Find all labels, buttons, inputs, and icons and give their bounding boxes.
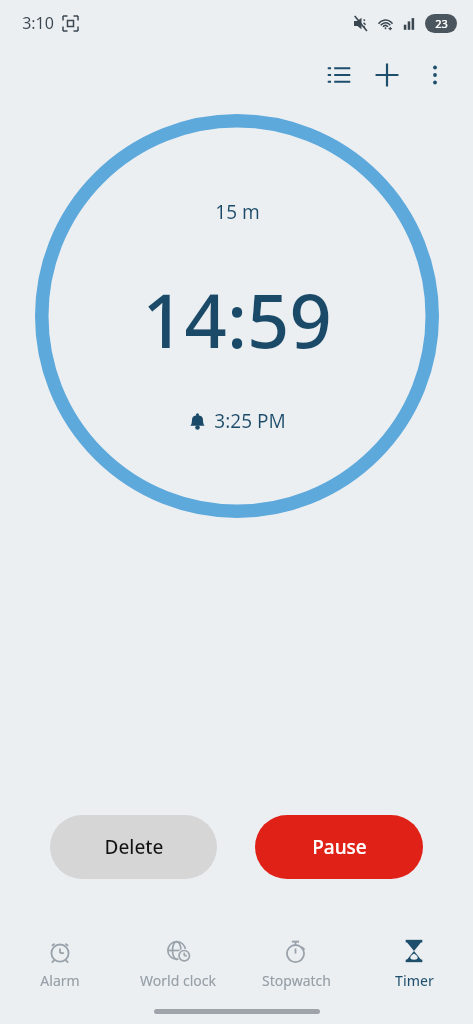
button[interactable]: Delete [50, 815, 217, 879]
staticText: Timer [395, 971, 434, 990]
staticText: 3:10 [22, 12, 54, 34]
button[interactable]: Stopwatch [237, 934, 355, 994]
button[interactable]: Timer [355, 934, 473, 994]
button[interactable]: Timer list [315, 51, 363, 99]
staticText: Pause [312, 834, 367, 860]
staticText: Delete [104, 834, 164, 860]
staticText: Alarm [40, 971, 80, 990]
staticText: 14:59 [142, 269, 332, 370]
button[interactable]: Alarm [0, 934, 119, 994]
button[interactable]: Add timer [363, 51, 411, 99]
button[interactable]: World clock [119, 934, 237, 994]
staticText: 23 [435, 16, 448, 31]
staticText: Stopwatch [262, 971, 331, 990]
staticText: 3:25 PM [214, 408, 286, 434]
button[interactable]: More options [411, 51, 459, 99]
button[interactable]: Pause [255, 815, 423, 879]
staticText: 15 m [215, 199, 260, 225]
staticText: World clock [140, 971, 216, 990]
